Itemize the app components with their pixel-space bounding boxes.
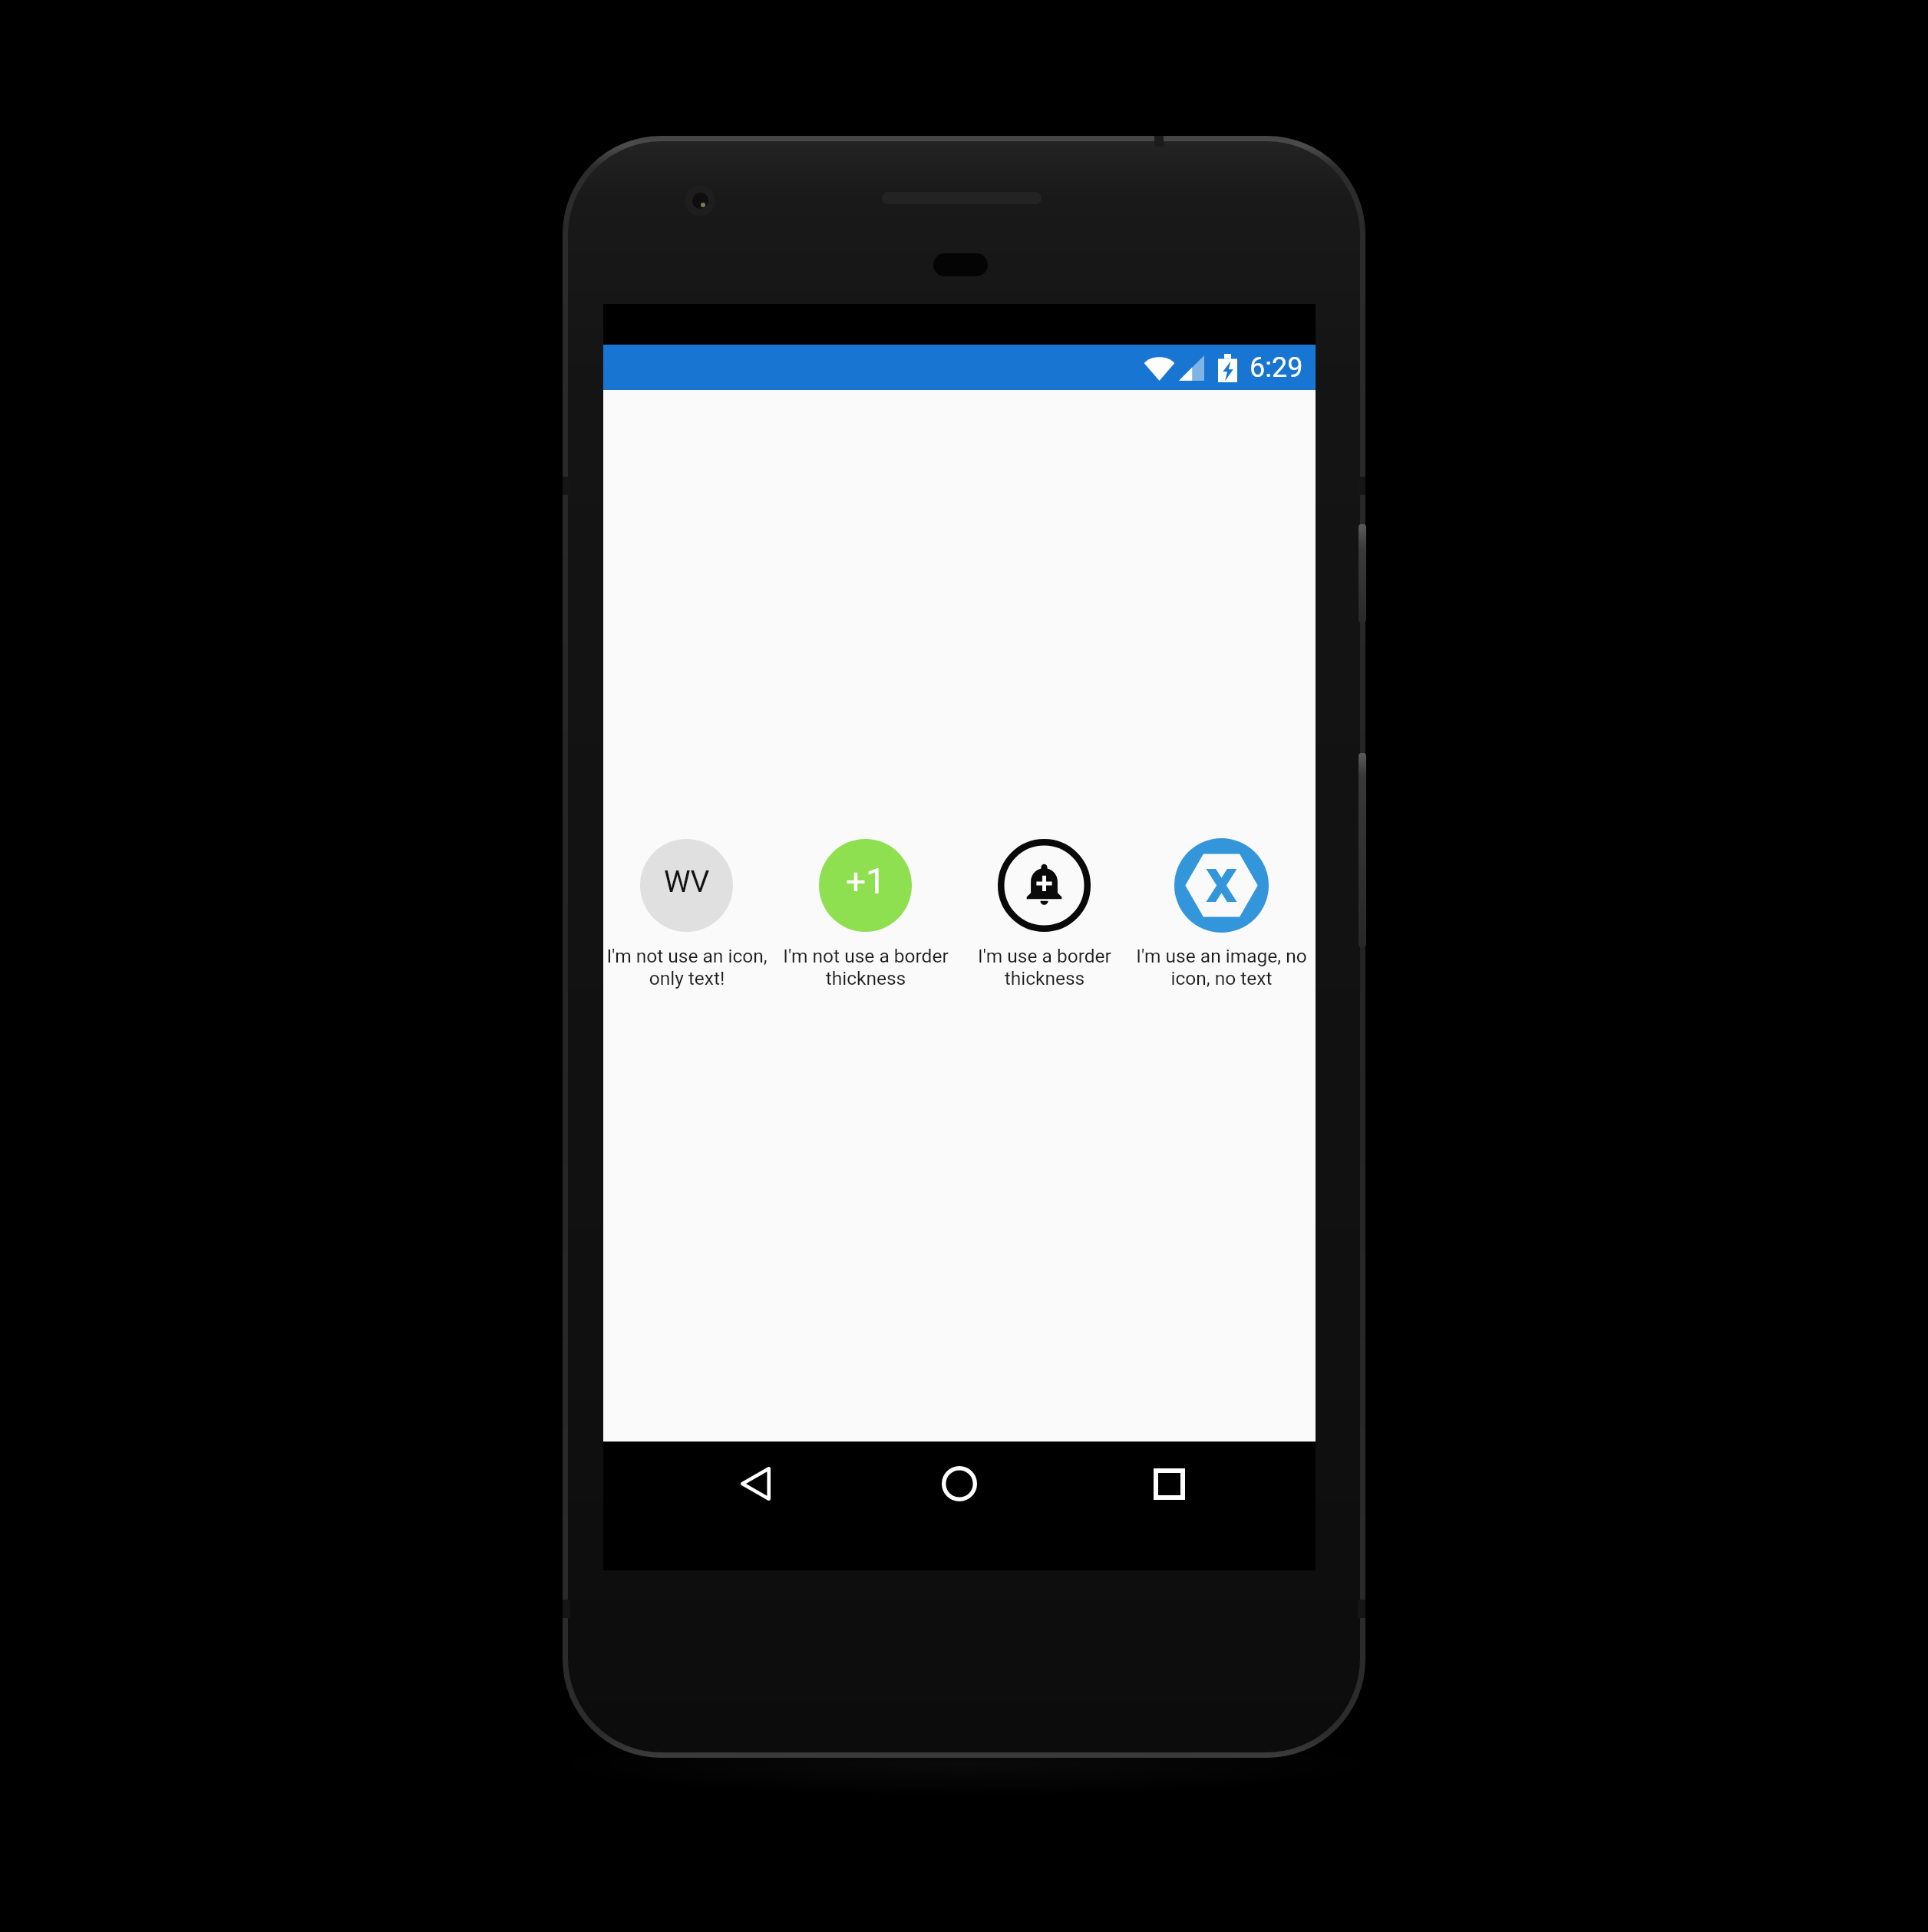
button[interactable]: I'm use a border thickness	[955, 839, 1134, 989]
staticText: I'm not use an icon, only text!	[606, 945, 768, 989]
staticText: 6:29	[1250, 352, 1303, 384]
staticText: I'm use an image, no icon, no text	[1136, 945, 1307, 989]
staticText: I'm use a border thickness	[978, 945, 1111, 989]
button[interactable]: +1	[776, 839, 955, 989]
button[interactable]: I'm use an image, no icon, no text	[1134, 839, 1309, 989]
button[interactable]: WV	[597, 839, 776, 989]
staticText: I'm not use a border thickness	[783, 945, 949, 989]
button[interactable]: Back	[709, 1442, 801, 1526]
button[interactable]: Recents	[1123, 1442, 1215, 1526]
staticText: +1	[846, 860, 886, 902]
button[interactable]: Home	[913, 1442, 1005, 1526]
staticText: WV	[664, 864, 710, 900]
